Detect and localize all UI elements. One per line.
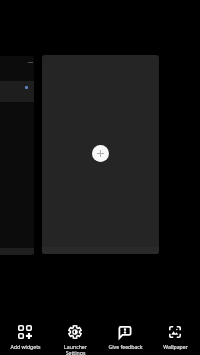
staticText: Launcher Settings (64, 343, 87, 355)
staticText: Give feedback (108, 343, 143, 350)
button[interactable]: Add page (92, 145, 109, 162)
button[interactable]: Launcher Settings (50, 325, 100, 355)
button[interactable]: Add page (42, 55, 159, 254)
button[interactable] (0, 56, 34, 255)
button[interactable]: Add widgets (0, 325, 50, 350)
button[interactable]: Give feedback (100, 325, 150, 350)
button[interactable]: Wallpaper (150, 325, 200, 350)
staticText: Add widgets (10, 343, 41, 350)
staticText: Wallpaper (163, 343, 188, 350)
